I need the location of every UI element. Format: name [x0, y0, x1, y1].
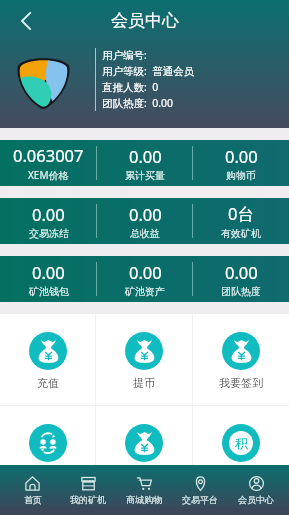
staticText: 积 [235, 435, 248, 451]
staticText: 0.00 [225, 145, 258, 167]
button[interactable]: 0.00 [97, 256, 193, 302]
staticText: 提币 [133, 376, 155, 390]
staticText: 会员中心 [238, 494, 274, 505]
button[interactable]: 提币 [96, 314, 192, 405]
button[interactable]: 我要签到 [193, 314, 289, 405]
staticText: 首页 [24, 494, 42, 505]
staticText: 团队热度: 0.00 [102, 96, 174, 110]
staticText: 用户编号: [102, 48, 147, 62]
staticText: 团队热度 [221, 285, 261, 298]
staticText: 总收益 [130, 227, 160, 240]
button[interactable]: 充值 [0, 314, 95, 405]
button[interactable]: 会员中心 [228, 465, 284, 515]
staticText: 0.00 [129, 203, 162, 225]
staticText: 用户等级: 普通会员 [102, 64, 195, 78]
staticText: 0.00 [32, 203, 65, 225]
button[interactable]: 兑换 [96, 406, 192, 465]
button[interactable]: 积 [193, 406, 289, 465]
staticText: 0.00 [129, 145, 162, 167]
staticText: 交易平台 [182, 494, 218, 505]
staticText: 矿池资产 [125, 285, 165, 298]
staticText: 0.063007 [13, 144, 84, 166]
staticText: 充值 [37, 376, 59, 390]
button[interactable]: 首页 [5, 465, 60, 515]
button[interactable]: 0.00 [97, 198, 193, 244]
staticText: 直推人数: 0 [102, 80, 159, 94]
button[interactable]: 0台 [193, 198, 289, 244]
staticText: 有效矿机 [221, 227, 261, 240]
button[interactable]: 0.00 [193, 256, 289, 302]
button[interactable]: 0.00 [97, 140, 193, 186]
staticText: 商城购物 [126, 494, 162, 505]
button[interactable]: 0.063007 [0, 140, 97, 186]
staticText: 我要签到 [219, 376, 263, 390]
button[interactable]: 交易平台 [172, 465, 228, 515]
button[interactable]: Back [11, 6, 41, 36]
button[interactable]: 0.00 [193, 140, 289, 186]
staticText: 交易冻结 [29, 227, 69, 240]
staticText: 0.00 [225, 261, 258, 283]
staticText: XEM价格 [28, 168, 69, 182]
button[interactable]: 0.00 [0, 198, 97, 244]
staticText: 我的矿机 [70, 494, 106, 505]
button[interactable]: 团队转账 [0, 406, 95, 465]
staticText: 累计买量 [125, 169, 165, 182]
staticText: 0台 [228, 202, 254, 225]
staticText: 购物币 [226, 169, 256, 182]
button[interactable]: 0.00 [0, 256, 97, 302]
staticText: 矿池钱包 [29, 285, 69, 298]
staticText: 0.00 [32, 261, 65, 283]
button[interactable]: 我的矿机 [60, 465, 116, 515]
staticText: 0.00 [129, 261, 162, 283]
staticText: 会员中心 [111, 10, 179, 31]
button[interactable]: 商城购物 [116, 465, 172, 515]
